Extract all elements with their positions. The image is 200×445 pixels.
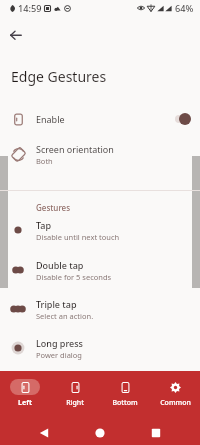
staticText: Disable for 5 seconds xyxy=(36,272,112,282)
staticText: Triple tap xyxy=(36,298,77,310)
staticText: Screen orientation xyxy=(36,143,114,155)
staticText: 14:59 xyxy=(18,2,42,15)
staticText: Tap xyxy=(36,219,52,231)
button[interactable]: Triple tap xyxy=(0,294,200,324)
staticText: Bottom xyxy=(112,398,138,408)
staticText: Edge Gestures xyxy=(11,67,107,86)
staticText: Double tap xyxy=(36,259,84,271)
staticText: Power dialog xyxy=(36,350,82,360)
button[interactable]: Long press xyxy=(0,333,200,363)
button[interactable]: Screen orientation xyxy=(0,139,200,169)
button[interactable]: Bottom xyxy=(100,371,150,415)
staticText: Gestures xyxy=(36,202,71,213)
button[interactable]: Recent apps xyxy=(144,421,168,445)
staticText: Enable xyxy=(36,113,65,125)
button[interactable]: Enable xyxy=(0,101,200,137)
button[interactable]: Common xyxy=(150,371,200,415)
staticText: Disable until next touch xyxy=(36,232,120,242)
staticText: Right xyxy=(66,398,84,408)
staticText: Long press xyxy=(36,337,83,349)
button[interactable]: Navigate up xyxy=(4,23,28,47)
staticText: Both xyxy=(36,156,53,166)
staticText: 64% xyxy=(175,2,194,15)
staticText: Common xyxy=(160,398,191,408)
button[interactable]: Right xyxy=(50,371,100,415)
staticText: Select an action. xyxy=(36,311,94,321)
staticText: Left xyxy=(18,398,32,408)
button[interactable]: Home xyxy=(88,421,112,445)
button[interactable]: Double tap xyxy=(0,255,200,285)
button[interactable]: Tap xyxy=(0,215,200,245)
button[interactable]: Back xyxy=(32,421,56,445)
button[interactable]: Left xyxy=(0,371,50,415)
